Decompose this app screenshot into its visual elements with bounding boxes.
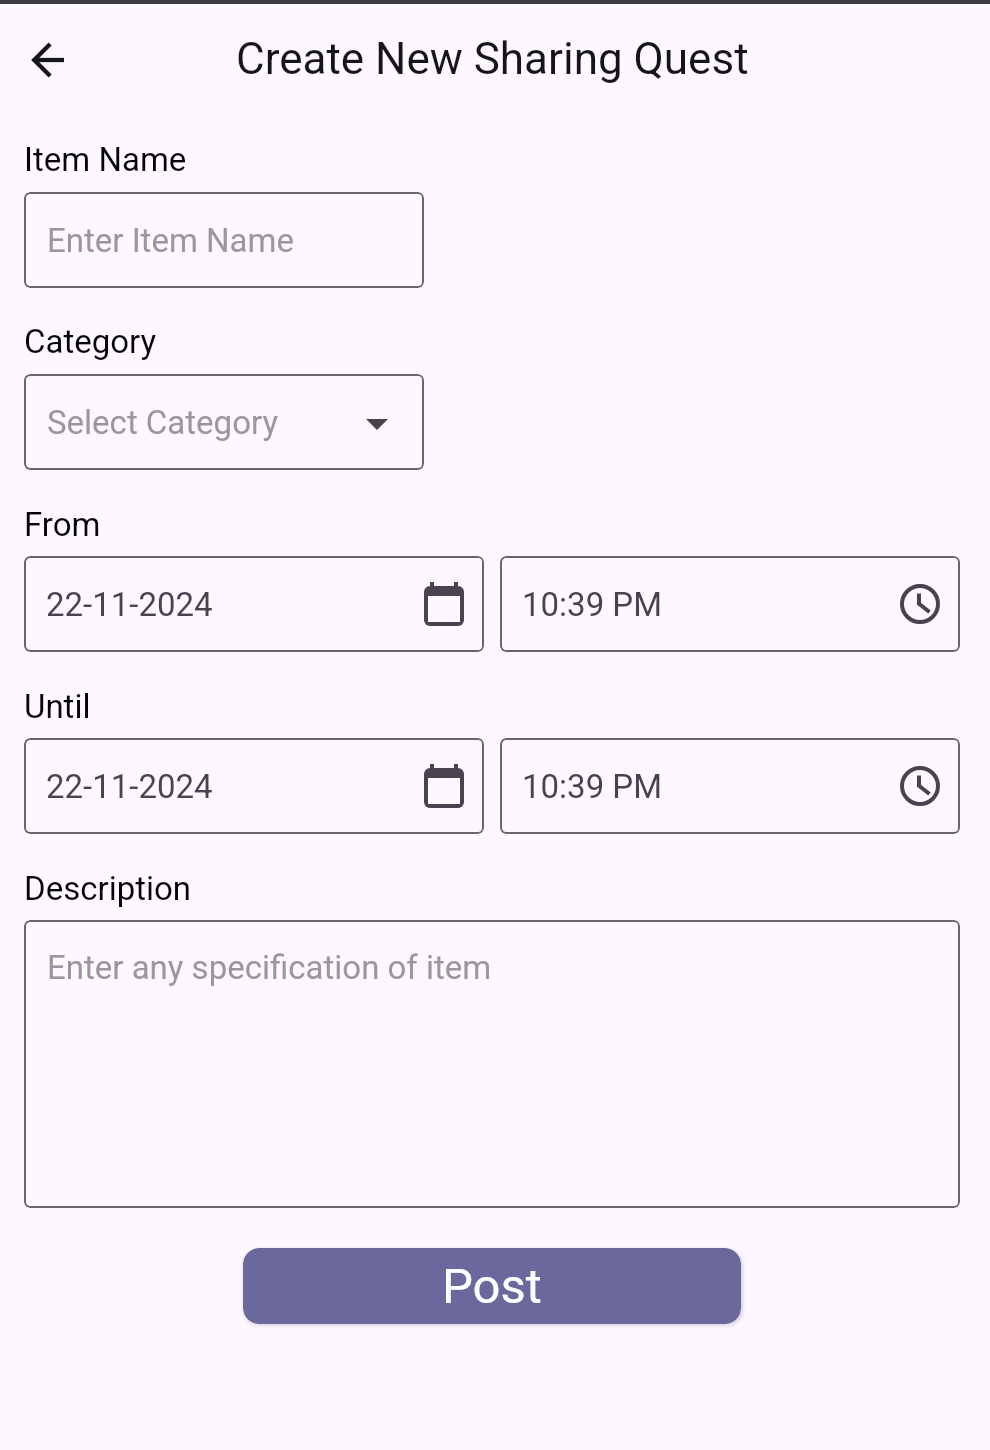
button[interactable]: 22-11-2024 (24, 556, 484, 652)
staticText: Enter Item Name (47, 221, 294, 260)
staticText: Select Category (47, 403, 279, 442)
button[interactable]: Post (243, 1248, 741, 1324)
button[interactable]: Back (10, 22, 86, 98)
button[interactable]: Enter any specification of item (24, 920, 960, 1208)
staticText: Until (24, 687, 91, 726)
button[interactable]: 22-11-2024 (24, 738, 484, 834)
button[interactable]: Enter Item Name (24, 192, 424, 288)
button[interactable]: 10:39 PM (500, 738, 960, 834)
staticText: Description (24, 869, 192, 908)
button[interactable]: Select Category (24, 374, 424, 470)
staticText: 10:39 PM (522, 767, 662, 806)
staticText: Enter any specification of item (47, 948, 492, 987)
staticText: 10:39 PM (522, 585, 662, 624)
staticText: Post (442, 1258, 542, 1315)
staticText: 22-11-2024 (46, 585, 213, 624)
staticText: 22-11-2024 (46, 767, 213, 806)
staticText: Create New Sharing Quest (236, 33, 749, 85)
staticText: Item Name (24, 140, 187, 179)
staticText: Category (24, 322, 157, 361)
button[interactable]: 10:39 PM (500, 556, 960, 652)
staticText: From (24, 505, 101, 544)
